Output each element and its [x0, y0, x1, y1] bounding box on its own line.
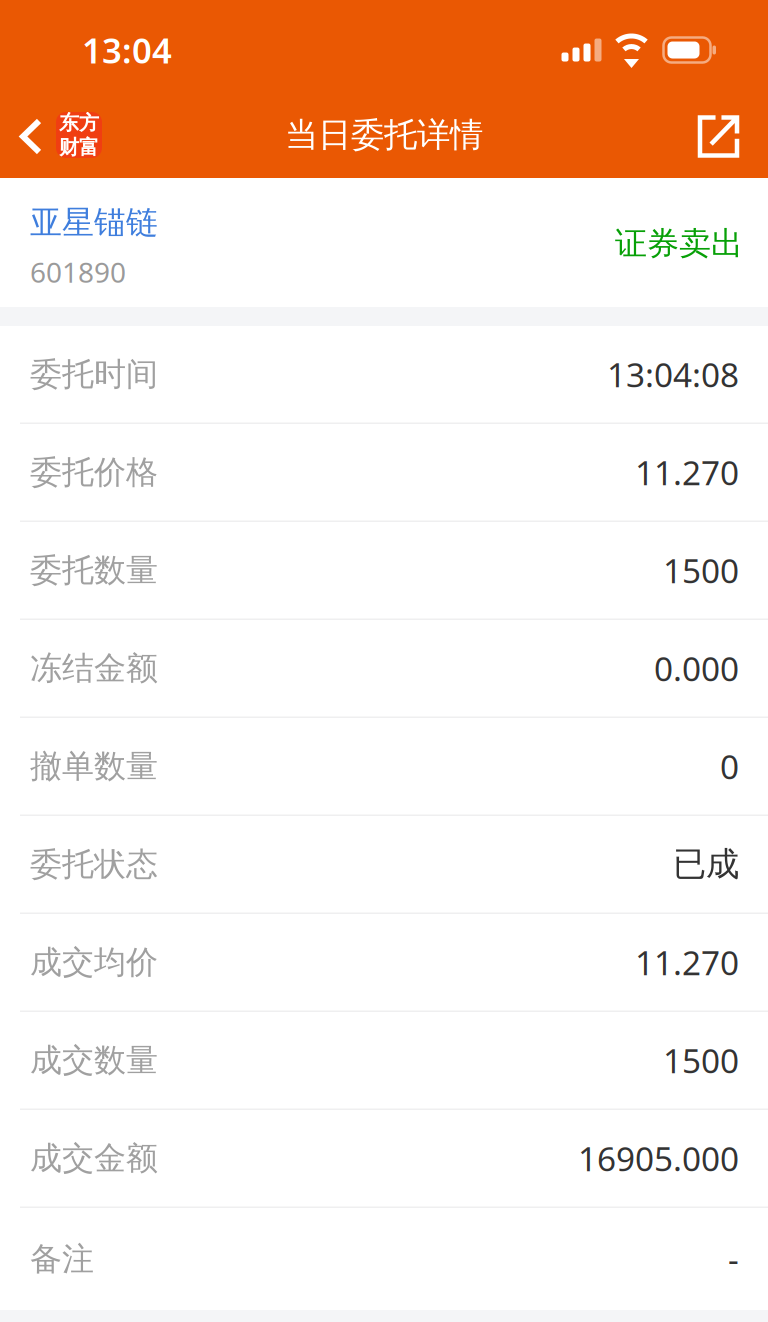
staticText: 成交金额 — [30, 1139, 158, 1178]
staticText: 当日委托详情 — [285, 114, 483, 155]
staticText: 13:04 — [82, 27, 172, 73]
staticText: 证券卖出 — [615, 224, 743, 263]
staticText: 0.000 — [654, 646, 739, 690]
button[interactable]: Back — [0, 100, 114, 178]
staticText: 冻结金额 — [30, 649, 158, 688]
staticText: 委托价格 — [30, 453, 158, 492]
staticText: 成交数量 — [30, 1041, 158, 1080]
staticText: 1500 — [663, 548, 739, 592]
staticText: 撤单数量 — [30, 747, 158, 786]
staticText: 备注 — [30, 1239, 94, 1279]
staticText: 11.270 — [635, 450, 739, 494]
staticText: - — [728, 1237, 739, 1281]
button[interactable]: Share — [682, 100, 768, 178]
staticText: 财富 — [59, 135, 99, 160]
staticText: 11.270 — [635, 940, 739, 984]
staticText: 委托数量 — [30, 551, 158, 590]
staticText: 成交均价 — [30, 943, 158, 982]
staticText: 亚星锚链 — [30, 203, 158, 242]
staticText: 13:04:08 — [607, 352, 739, 396]
staticText: 0 — [720, 744, 739, 788]
staticText: 委托状态 — [30, 845, 158, 884]
staticText: 601890 — [30, 253, 126, 290]
staticText: 1500 — [663, 1038, 739, 1082]
staticText: 16905.000 — [578, 1136, 739, 1180]
staticText: 委托时间 — [30, 355, 158, 394]
staticText: 已成 — [673, 844, 739, 885]
staticText: 东方 — [59, 110, 99, 135]
